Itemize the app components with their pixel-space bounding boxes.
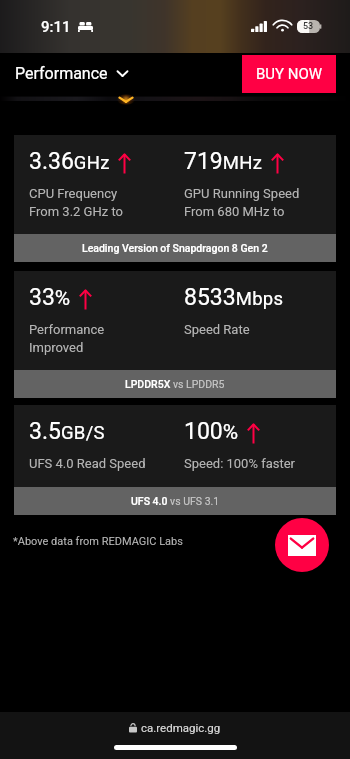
staticText: Performance Improved xyxy=(29,322,105,356)
button[interactable]: 3.5GB/S xyxy=(14,405,336,515)
button[interactable]: ca.redmagic.gg xyxy=(129,721,221,734)
staticText: BUY NOW xyxy=(256,65,323,83)
staticText: UFS 4.0 Read Speed xyxy=(29,456,146,471)
staticText: 8533Mbps xyxy=(184,284,284,311)
staticText: 53 xyxy=(303,21,314,32)
staticText: LPDDR5X vs LPDDR5 xyxy=(125,378,225,390)
staticText: 719MHz xyxy=(184,148,263,175)
button[interactable]: 3.36GHz xyxy=(14,135,336,262)
button[interactable]: BUY NOW xyxy=(242,55,336,93)
staticText: Speed: 100% faster xyxy=(184,456,296,471)
button[interactable]: Contact us xyxy=(275,518,329,572)
staticText: UFS 4.0 vs UFS 3.1 xyxy=(131,495,220,507)
staticText: Performance xyxy=(15,64,108,83)
staticText: ca.redmagic.gg xyxy=(141,721,221,734)
staticText: 3.5GB/S xyxy=(29,418,105,445)
button[interactable]: Performance xyxy=(14,58,129,89)
staticText: GPU Running Speed From 680 MHz to xyxy=(184,186,300,220)
staticText: Leading Version of Snapdragon 8 Gen 2 xyxy=(82,242,268,254)
staticText: 9:11 xyxy=(41,18,71,36)
staticText: 100% xyxy=(184,418,239,445)
staticText: 3.36GHz xyxy=(29,148,110,175)
staticText: CPU Frequency From 3.2 GHz to xyxy=(29,186,123,220)
staticText: *Above data from REDMAGIC Labs xyxy=(13,535,183,548)
staticText: Speed Rate xyxy=(184,322,250,337)
button[interactable]: 33% xyxy=(14,271,336,398)
staticText: 33% xyxy=(29,284,71,311)
